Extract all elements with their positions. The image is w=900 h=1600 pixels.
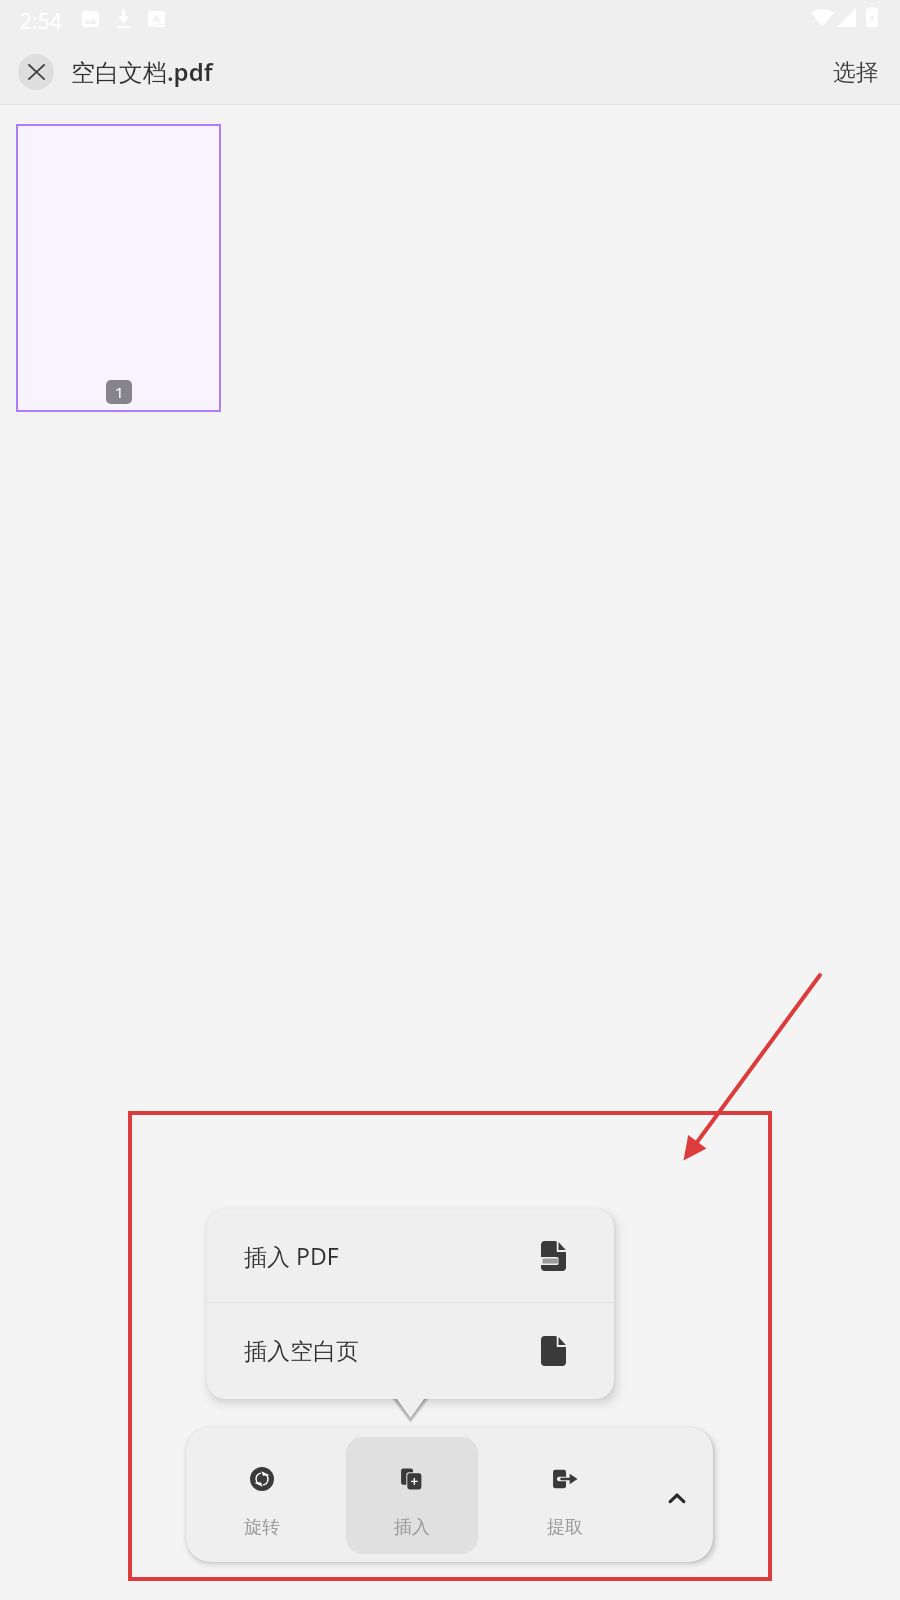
staticText: 插入 PDF <box>244 1240 339 1271</box>
button[interactable]: Page 1 <box>16 124 221 412</box>
button[interactable]: 插入 PDF <box>207 1209 614 1302</box>
staticText: 1 <box>115 382 124 402</box>
staticText: 提取 <box>547 1516 583 1539</box>
staticText: 2:54 <box>20 7 62 36</box>
button[interactable]: 插入空白页 <box>207 1303 614 1399</box>
staticText: 旋转 <box>244 1516 280 1539</box>
button[interactable]: Collapse <box>633 1427 713 1562</box>
staticText: 选择 <box>833 58 879 87</box>
button[interactable]: 提取 <box>499 1437 631 1554</box>
button[interactable]: Close <box>18 54 54 90</box>
button[interactable]: 选择 <box>812 48 900 97</box>
staticText: 插入空白页 <box>244 1337 359 1366</box>
staticText: 插入 <box>394 1516 430 1539</box>
button[interactable]: 旋转 <box>196 1437 328 1554</box>
button[interactable]: 插入 <box>346 1437 478 1554</box>
staticText: 空白文档.pdf <box>71 55 213 88</box>
